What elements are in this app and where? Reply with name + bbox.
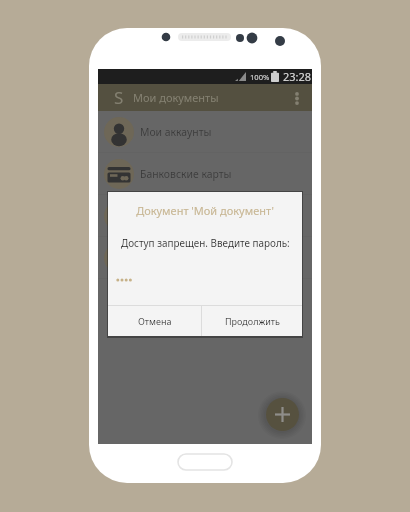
staticText: 23:28: [283, 69, 312, 84]
staticText: Мои документы: [133, 90, 219, 105]
staticText: Мои пароли: [140, 209, 202, 223]
staticText: Отмена: [138, 315, 172, 327]
staticText: Мои аккаунты: [140, 125, 212, 139]
button[interactable]: Мои документы: [98, 237, 312, 278]
button[interactable]: Мои пароли: [98, 195, 312, 236]
staticText: Продолжить: [225, 315, 280, 327]
staticText: Доступ запрещен. Введите пароль:: [121, 236, 290, 249]
button[interactable]: Add: [266, 398, 299, 431]
staticText: Банковские карты: [140, 167, 232, 181]
staticText: 100%: [250, 72, 270, 82]
button[interactable]: Банковские карты: [98, 153, 312, 194]
button[interactable]: More options: [287, 88, 307, 108]
staticText: S: [114, 86, 124, 109]
button[interactable]: Отмена: [108, 306, 201, 336]
button[interactable]: Мои аккаунты: [98, 111, 312, 152]
staticText: Документ 'Мой документ': [108, 203, 302, 218]
button[interactable]: Продолжить: [202, 306, 302, 336]
